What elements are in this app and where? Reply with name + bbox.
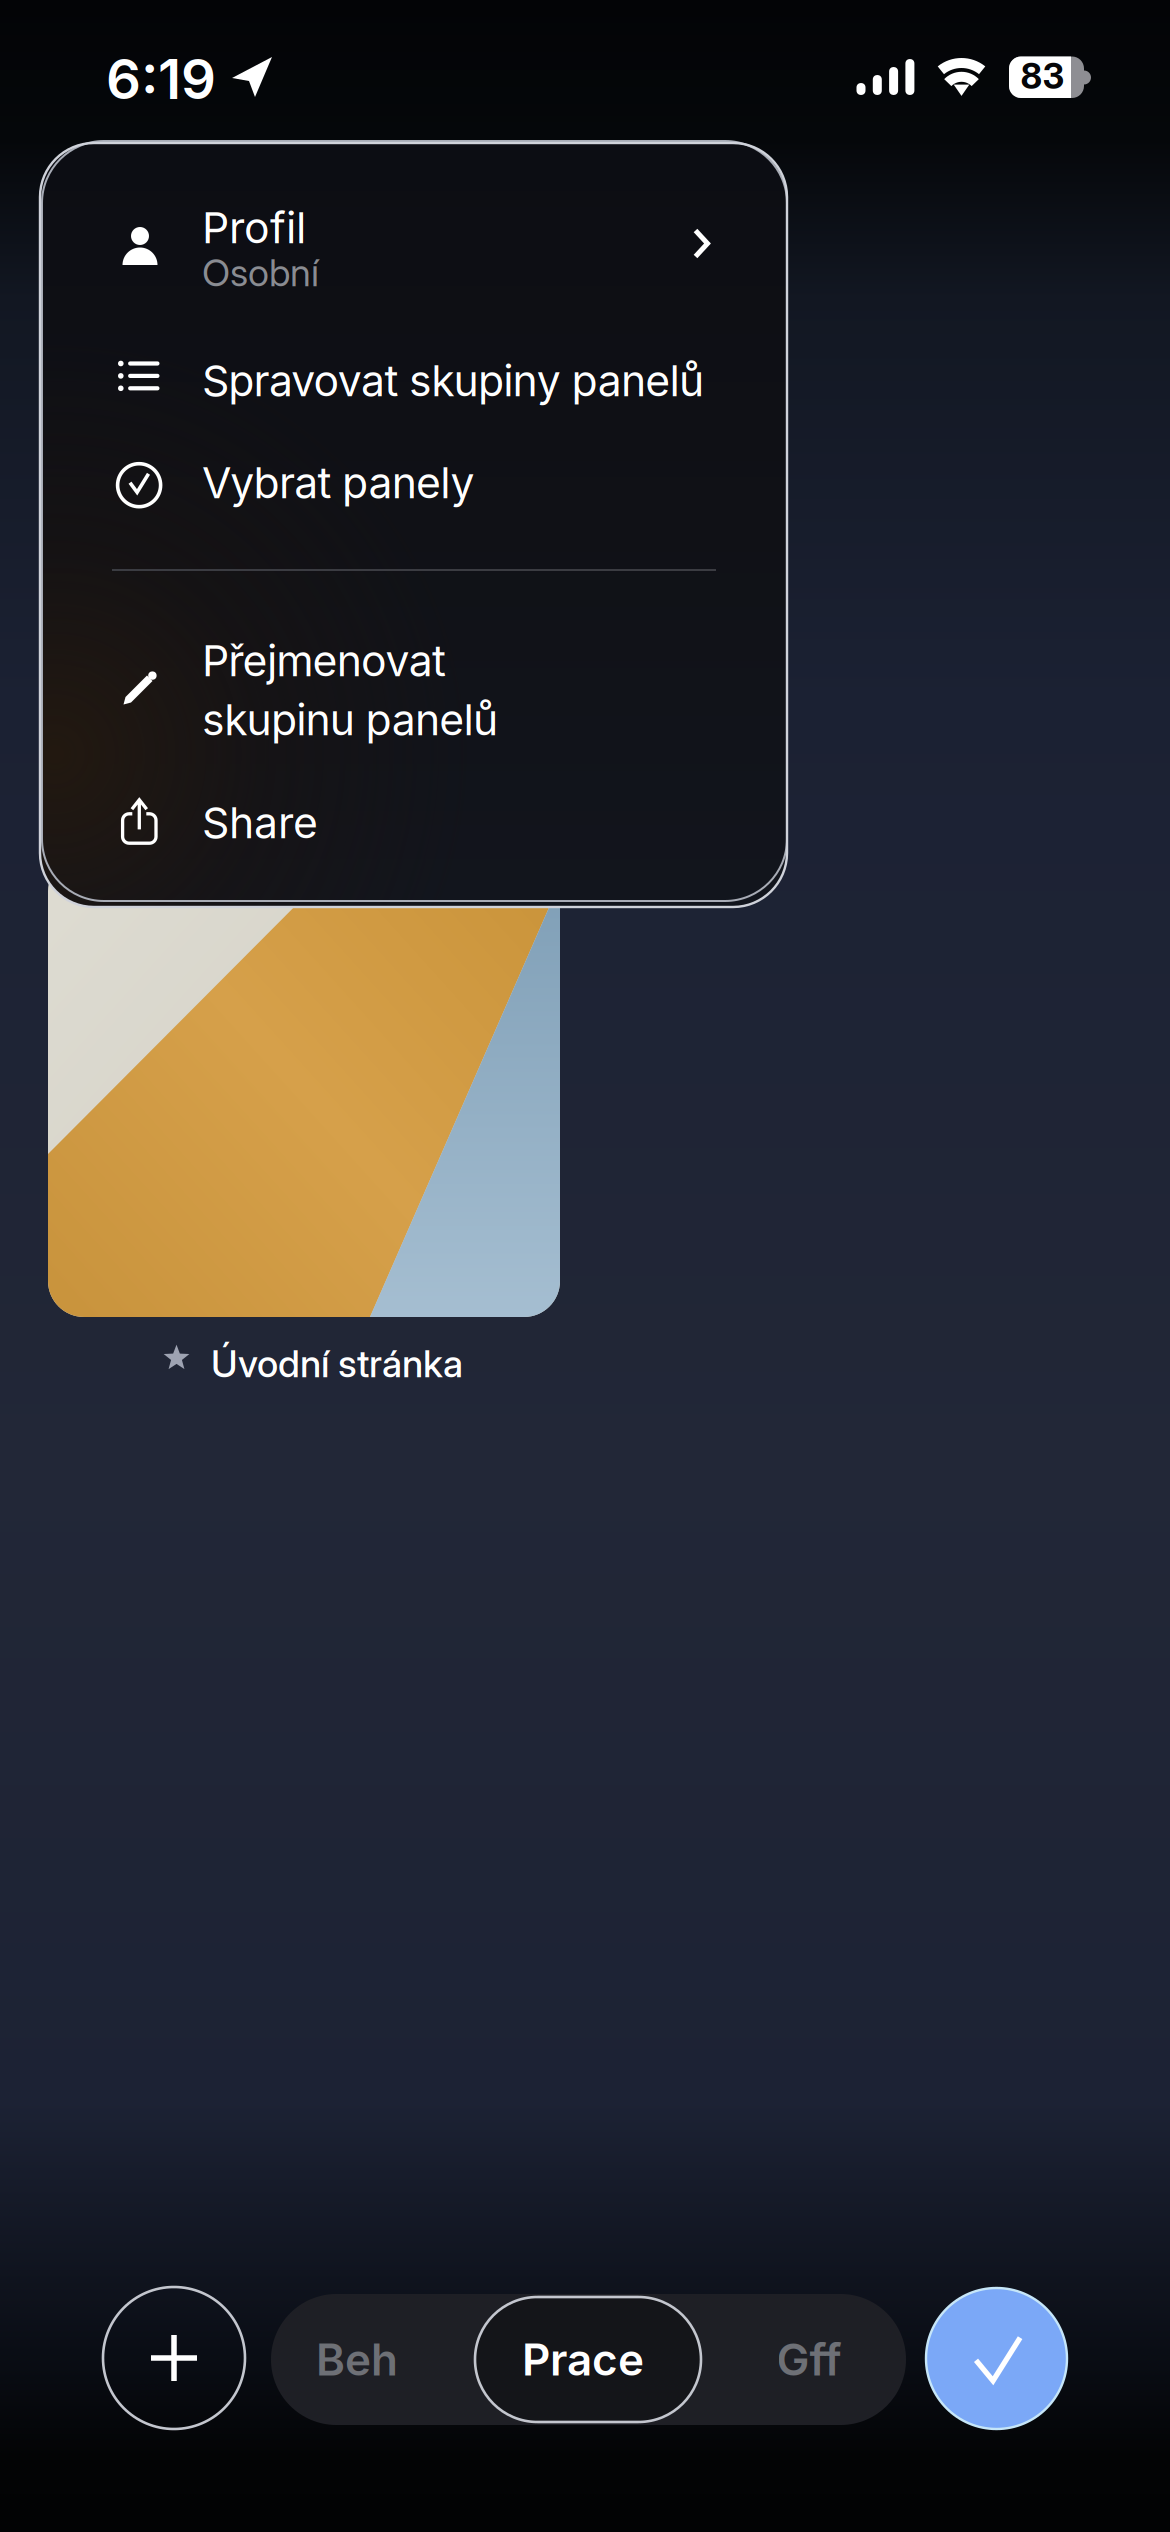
button[interactable]: Gff — [705, 2294, 913, 2425]
button[interactable]: Profil — [40, 186, 787, 346]
staticText: skupinu panelů — [202, 694, 498, 746]
staticText: Beh — [316, 2333, 398, 2386]
staticText: Spravovat skupiny panelů — [202, 355, 704, 407]
staticText: Osobní — [202, 250, 319, 295]
button[interactable]: Vybrat panely — [40, 439, 787, 535]
button[interactable]: Share — [40, 775, 787, 879]
staticText: Vybrat panely — [202, 457, 475, 509]
staticText: Přejmenovat — [202, 635, 446, 687]
staticText: Prace — [522, 2333, 644, 2386]
button[interactable]: Prace — [475, 2297, 701, 2422]
staticText: 83 — [1021, 55, 1065, 97]
button[interactable]: Beh — [262, 2294, 452, 2425]
staticText: Share — [202, 797, 318, 849]
staticText: Profil — [202, 202, 306, 254]
staticText: Gff — [776, 2333, 841, 2386]
button[interactable]: Spravovat skupiny panelů — [40, 334, 787, 430]
staticText: 6:19 — [106, 46, 216, 112]
button[interactable]: Done — [926, 2288, 1067, 2429]
button[interactable]: New Tab — [103, 2287, 245, 2429]
button[interactable]: Přejmenovat — [40, 622, 787, 778]
staticText: Úvodní stránka — [211, 1341, 463, 1386]
